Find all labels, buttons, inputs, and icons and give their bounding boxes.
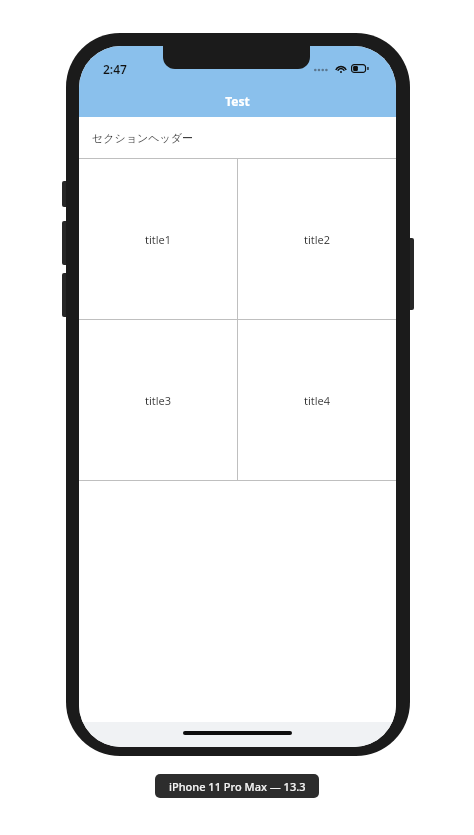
staticText: title1 xyxy=(145,232,172,247)
button[interactable]: title4 xyxy=(238,320,396,480)
other: Volume up xyxy=(62,221,67,265)
button[interactable]: title1 xyxy=(79,159,237,319)
other: Power xyxy=(409,238,414,310)
other: Silence switch xyxy=(62,181,67,207)
staticText: セクションヘッダー xyxy=(92,131,194,145)
staticText: title2 xyxy=(304,232,331,247)
button[interactable]: title2 xyxy=(238,159,396,319)
staticText: Test xyxy=(79,93,396,109)
staticText: iPhone 11 Pro Max — 13.3 xyxy=(169,779,306,794)
staticText: 2:47 xyxy=(103,61,127,77)
other: Volume down xyxy=(62,273,67,317)
button[interactable]: title3 xyxy=(79,320,237,480)
staticText: title4 xyxy=(304,393,331,408)
staticText: title3 xyxy=(145,393,172,408)
